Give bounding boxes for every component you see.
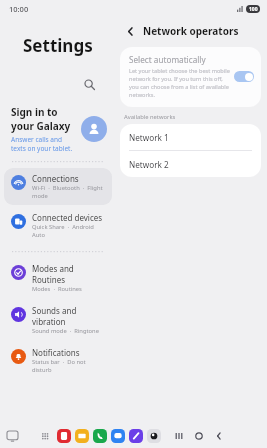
button[interactable]: Recents preview [6, 430, 19, 443]
button[interactable]: Camera [147, 429, 161, 443]
staticText: Modes · Routines [32, 285, 82, 293]
staticText: Let your tablet choose the best mobile [129, 67, 230, 75]
button[interactable]: Connected devices [4, 207, 112, 244]
button[interactable]: Samsung Internet [57, 429, 71, 443]
button[interactable]: My Files [75, 429, 89, 443]
staticText: Connected devices [32, 212, 103, 223]
button[interactable]: Select automatically toggle [234, 71, 254, 82]
button[interactable]: Recents [172, 429, 186, 443]
staticText: Select automatically [129, 54, 206, 65]
button[interactable]: Apps [39, 430, 52, 443]
button[interactable]: Messages [111, 429, 125, 443]
staticText: Sound mode · Ringtone [32, 327, 99, 335]
button[interactable]: Connections [4, 168, 112, 205]
staticText: mode [32, 192, 48, 200]
staticText: Answer calls and [11, 135, 63, 144]
button[interactable]: Network 1 [120, 124, 261, 150]
staticText: your Galaxy [11, 119, 71, 133]
staticText: Sign in to [11, 105, 58, 119]
staticText: Wi-Fi · Bluetooth · Flight [32, 184, 103, 192]
button[interactable]: Select automatically [120, 47, 261, 107]
staticText: Sounds and [32, 305, 77, 316]
staticText: Settings [23, 34, 93, 57]
staticText: Connections [32, 173, 79, 184]
button[interactable]: Notifications [4, 342, 112, 379]
staticText: vibration [32, 316, 66, 327]
button[interactable]: Modes and [4, 258, 112, 298]
button[interactable]: Gallery [129, 429, 143, 443]
staticText: network for you. If you turn this off, [129, 75, 223, 83]
staticText: Modes and [32, 263, 74, 274]
staticText: Routines [32, 274, 65, 285]
button[interactable]: Sounds and [4, 300, 112, 340]
staticText: you can choose from a list of available [129, 83, 229, 91]
staticText: Network operators [143, 24, 239, 38]
staticText: Network 2 [129, 159, 169, 170]
staticText: disturb [32, 366, 52, 374]
button[interactable]: Sign in to [0, 103, 116, 155]
button[interactable]: Search [78, 73, 100, 95]
button[interactable]: Network 2 [120, 151, 261, 177]
staticText: texts on your tablet. [11, 144, 73, 153]
staticText: Available networks [124, 113, 176, 121]
button[interactable]: Back [212, 429, 226, 443]
staticText: Quick Share · Android [32, 223, 94, 231]
button[interactable]: Phone [93, 429, 107, 443]
staticText: Network 1 [129, 132, 169, 143]
staticText: 10:00 [9, 4, 29, 14]
staticText: Auto [32, 231, 45, 239]
staticText: networks. [129, 91, 155, 99]
button[interactable]: Home [192, 429, 206, 443]
button[interactable]: Back [120, 21, 140, 41]
staticText: Notifications [32, 347, 80, 358]
staticText: 100 [249, 6, 258, 13]
staticText: Status bar · Do not [32, 358, 86, 366]
